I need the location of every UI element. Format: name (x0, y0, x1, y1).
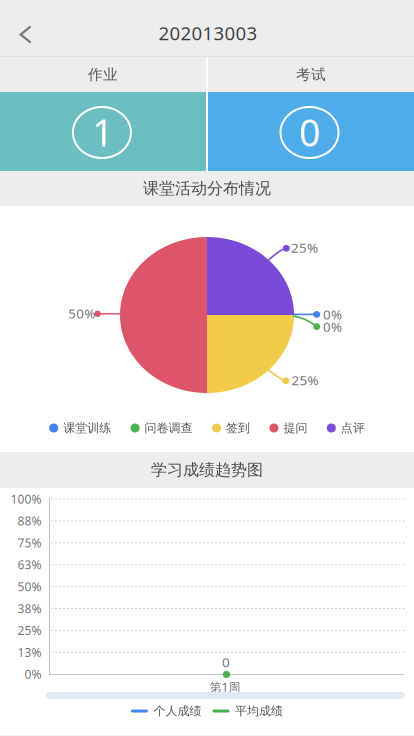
staticText: 课堂活动分布情况 (143, 179, 271, 198)
staticText: 个人成绩 (153, 704, 201, 718)
staticText: 63% (18, 557, 42, 573)
staticText: 50% (68, 304, 95, 322)
staticText: 第1周 (209, 679, 240, 695)
staticText: 13% (18, 644, 42, 660)
staticText: 0% (25, 666, 42, 682)
button[interactable]: 0 (208, 92, 414, 171)
staticText: 0% (323, 305, 342, 323)
staticText: 学习成绩趋势图 (151, 460, 263, 480)
staticText: 作业 (88, 65, 118, 83)
staticText: 提问 (283, 421, 307, 435)
staticText: 50% (18, 579, 42, 594)
staticText: 平均成绩 (235, 704, 283, 718)
staticText: 100% (11, 491, 42, 507)
staticText: 25% (291, 239, 318, 256)
staticText: 0% (323, 318, 342, 335)
staticText: 25% (291, 371, 318, 389)
staticText: 38% (18, 600, 42, 616)
staticText: 课堂训练 (63, 421, 111, 435)
staticText: 75% (18, 535, 42, 551)
button[interactable]: 作业 (0, 57, 206, 92)
staticText: 0 (299, 107, 320, 157)
staticText: 点评 (341, 421, 365, 435)
staticText: 0 (222, 653, 230, 671)
staticText: 25% (18, 622, 42, 638)
staticText: 考试 (296, 65, 326, 83)
staticText: 1 (92, 107, 113, 157)
staticText: 签到 (226, 421, 250, 435)
button[interactable]: 1 (0, 92, 206, 171)
button[interactable]: 考试 (208, 57, 414, 92)
staticText: 88% (18, 513, 42, 529)
button[interactable]: Back (4, 12, 48, 56)
staticText: 202013003 (158, 21, 257, 45)
staticText: 问卷调查 (145, 421, 193, 435)
